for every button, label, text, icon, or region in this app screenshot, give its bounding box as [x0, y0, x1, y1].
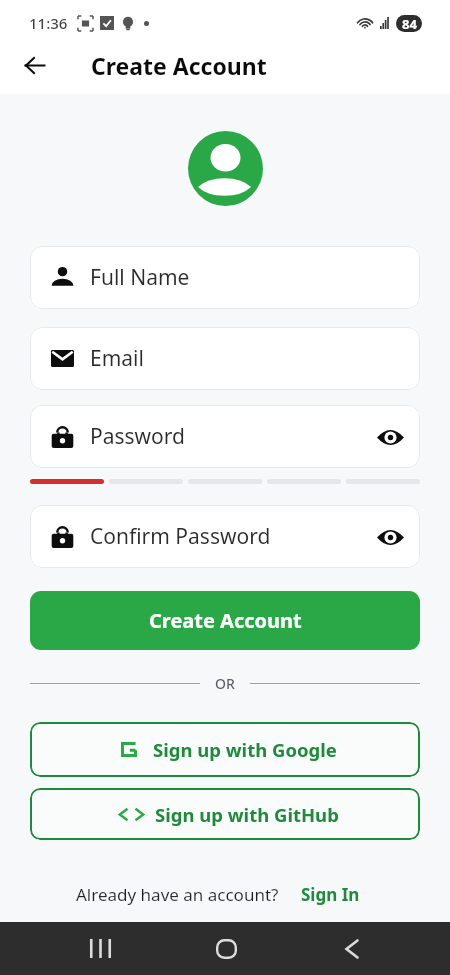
button[interactable]: Back: [12, 45, 58, 86]
staticText: Email: [90, 344, 144, 373]
staticText: Create Account: [91, 50, 267, 81]
button[interactable]: Sign up with GitHub: [30, 788, 420, 840]
staticText: Sign up with Google: [153, 737, 337, 762]
button[interactable]: Confirm Password: [30, 505, 420, 568]
staticText: 84: [402, 15, 417, 32]
button[interactable]: Show password: [373, 420, 407, 454]
button[interactable]: Email: [30, 327, 420, 390]
button[interactable]: Home: [199, 922, 254, 975]
staticText: Create Account: [149, 607, 302, 634]
staticText: Sign In: [301, 883, 360, 906]
button[interactable]: Recent apps: [72, 922, 127, 975]
staticText: Already have an account?: [76, 883, 279, 906]
staticText: Sign up with GitHub: [155, 802, 339, 827]
button[interactable]: Back: [324, 922, 379, 975]
staticText: Full Name: [90, 263, 190, 292]
button[interactable]: Create Account: [30, 591, 420, 650]
button[interactable]: Password: [30, 405, 420, 468]
button[interactable]: Sign up with Google: [30, 722, 420, 777]
staticText: Confirm Password: [90, 522, 271, 551]
staticText: 11:36: [29, 13, 68, 33]
staticText: Password: [90, 422, 185, 451]
button[interactable]: Full Name: [30, 246, 420, 309]
button[interactable]: Show password: [373, 520, 407, 554]
staticText: OR: [215, 674, 235, 693]
button[interactable]: Sign In: [301, 883, 360, 906]
